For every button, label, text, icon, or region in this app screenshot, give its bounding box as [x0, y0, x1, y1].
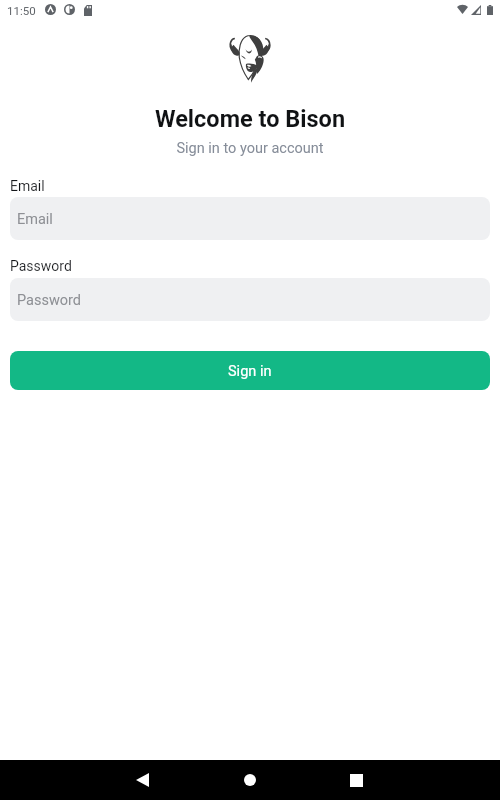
staticText: Sign in [228, 363, 272, 380]
button[interactable]: Email [10, 197, 490, 240]
staticText: Email [10, 178, 45, 194]
staticText: Email [17, 211, 53, 228]
button[interactable]: Home [226, 760, 273, 800]
button[interactable]: Sign in [10, 351, 490, 390]
staticText: Welcome to Bison [0, 105, 500, 133]
button[interactable]: Back [119, 760, 166, 800]
button[interactable]: Password [10, 278, 490, 321]
staticText: Sign in to your account [0, 140, 500, 157]
button[interactable]: Recent apps [333, 760, 380, 800]
staticText: Password [10, 258, 72, 274]
staticText: 11:50 [7, 4, 36, 17]
staticText: Password [17, 292, 82, 309]
